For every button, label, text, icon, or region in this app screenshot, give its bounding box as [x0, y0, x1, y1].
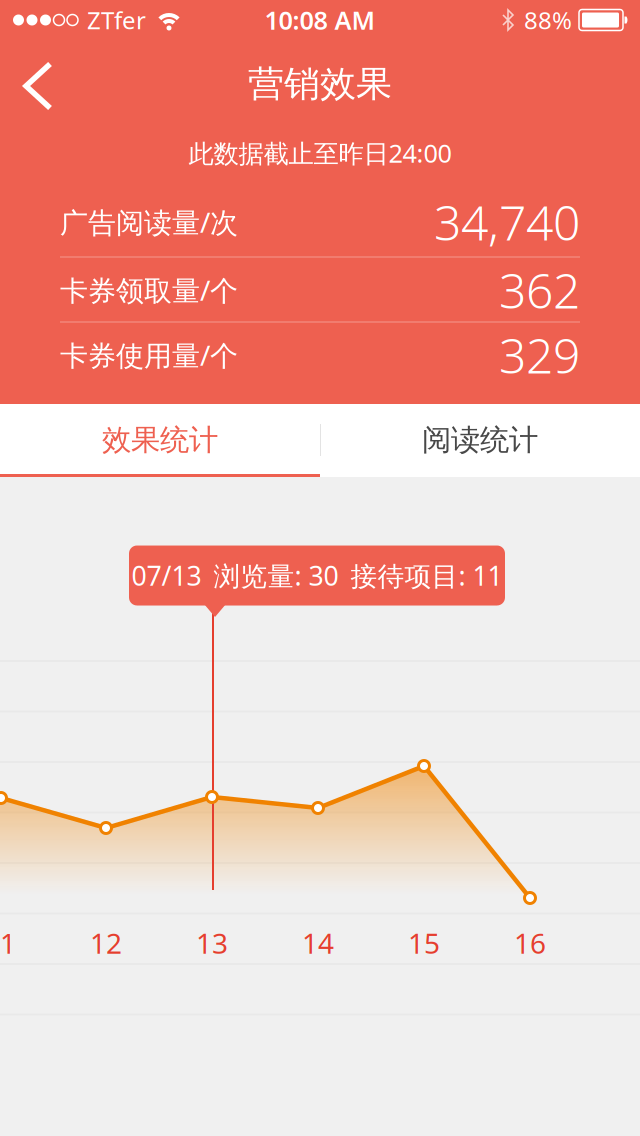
staticText: 362 [499, 258, 580, 322]
staticText: 16 [514, 924, 546, 962]
staticText: 88% [524, 4, 572, 36]
staticText: ZTfer [87, 4, 146, 36]
button[interactable]: 效果统计 [0, 403, 320, 476]
staticText: 效果统计 [102, 422, 218, 458]
staticText: 15 [408, 924, 440, 962]
staticText: 12 [90, 924, 122, 962]
staticText: 07/13 [131, 558, 201, 593]
staticText: 卡券领取量/个 [60, 271, 238, 309]
staticText: 广告阅读量/次 [60, 203, 238, 241]
staticText: 卡券使用量/个 [60, 336, 238, 374]
staticText: 34,740 [434, 190, 580, 254]
staticText: 浏览量: 30 [213, 558, 338, 593]
staticText: 接待项目: 11 [350, 558, 502, 593]
button[interactable]: 阅读统计 [320, 403, 640, 476]
staticText: 11 [0, 924, 16, 962]
staticText: 13 [196, 924, 228, 962]
staticText: 329 [499, 323, 580, 387]
staticText: 此数据截止至昨日24:00 [188, 136, 451, 170]
staticText: 营销效果 [248, 62, 392, 106]
staticText: 阅读统计 [422, 422, 538, 458]
staticText: 10:08 AM [264, 3, 375, 37]
staticText: 14 [302, 924, 334, 962]
button[interactable] [14, 56, 58, 116]
